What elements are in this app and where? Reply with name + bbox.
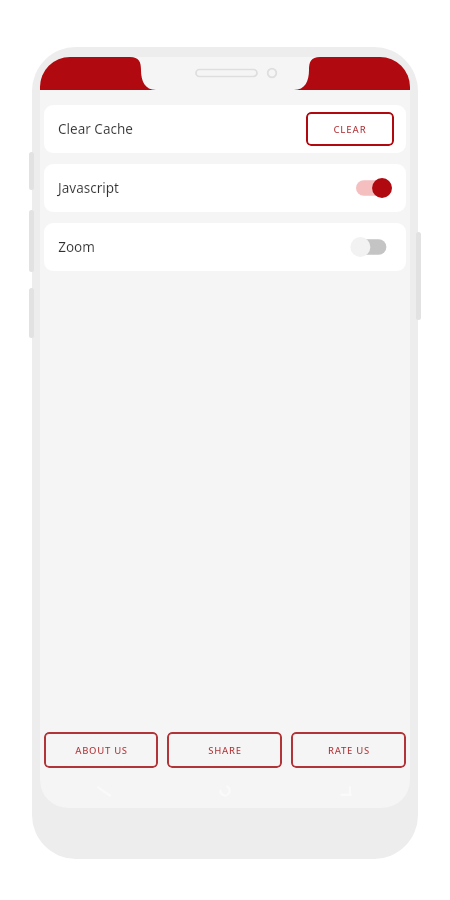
button[interactable]: Toggle on xyxy=(354,175,394,201)
button[interactable]: Clear Cache xyxy=(44,105,406,153)
staticText: CLEAR xyxy=(333,123,367,136)
staticText: Javascript xyxy=(58,179,119,197)
button[interactable]: RATE US xyxy=(291,732,406,768)
button[interactable]: SHARE xyxy=(167,732,282,768)
button[interactable]: Zoom xyxy=(44,223,406,271)
staticText: Zoom xyxy=(58,238,95,256)
staticText: Clear Cache xyxy=(58,120,133,138)
button[interactable]: ABOUT US xyxy=(44,732,158,768)
button[interactable]: Toggle off xyxy=(354,234,394,260)
button[interactable]: CLEAR xyxy=(306,112,394,146)
button[interactable]: Javascript xyxy=(44,164,406,212)
staticText: ABOUT US xyxy=(75,744,128,757)
staticText: RATE US xyxy=(328,744,370,757)
staticText: SHARE xyxy=(208,744,242,757)
